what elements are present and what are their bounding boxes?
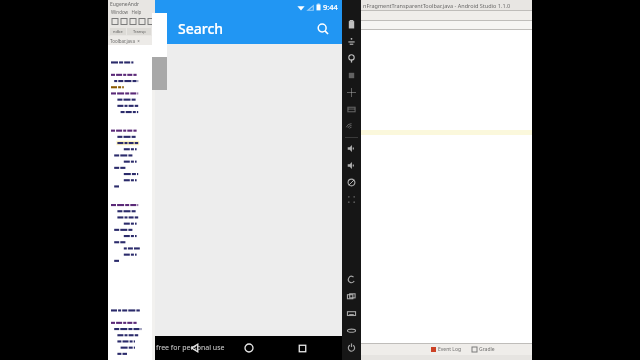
button[interactable]: Emulator control 4 — [342, 67, 361, 84]
button[interactable]: Emulator control 2 — [342, 33, 361, 50]
button[interactable]: Emulator control 7 — [342, 118, 361, 135]
staticText: Transp — [133, 29, 146, 34]
button[interactable]: Emulator control 9 — [342, 157, 361, 174]
button[interactable]: Emulator control 10 — [342, 174, 361, 191]
button[interactable]: Emulator action 3 — [342, 305, 361, 322]
button[interactable]: Emulator control 3 — [342, 50, 361, 67]
button[interactable]: Emulator control 6 — [342, 101, 361, 118]
staticText: Event Log — [438, 346, 462, 353]
button[interactable]: ndbe — [110, 28, 126, 35]
staticText: 9:44 — [323, 2, 338, 12]
staticText: Gradle — [479, 346, 495, 353]
staticText: nFragmentTransparentToolbar.java - Andro… — [363, 2, 511, 9]
button[interactable]: Emulator action 2 — [342, 288, 361, 305]
button[interactable]: Emulator control 8 — [342, 140, 361, 157]
button[interactable]: Emulator control 1 — [342, 16, 361, 33]
button[interactable]: Emulator control 5 — [342, 84, 361, 101]
button[interactable]: Recent apps — [289, 336, 315, 360]
button[interactable]: Emulator action 1 — [342, 271, 361, 288]
staticText: ndbe — [113, 29, 123, 34]
staticText: free for personal use — [156, 343, 225, 353]
button[interactable]: Search — [312, 18, 334, 40]
staticText: EugeneAndr — [110, 1, 140, 8]
button[interactable]: Emulator action 5 — [342, 339, 361, 356]
staticText: Search — [178, 19, 224, 38]
button[interactable]: Emulator control 11 — [342, 191, 361, 208]
button[interactable]: Gradle — [472, 346, 495, 353]
button[interactable]: Transp — [127, 28, 151, 35]
staticText: Toolbar.java × — [110, 38, 140, 44]
button[interactable]: Emulator action 4 — [342, 322, 361, 339]
staticText: Window Help — [111, 9, 142, 15]
button[interactable]: Event Log — [431, 346, 462, 353]
button[interactable]: Back — [182, 336, 208, 360]
button[interactable]: Home — [236, 336, 262, 360]
